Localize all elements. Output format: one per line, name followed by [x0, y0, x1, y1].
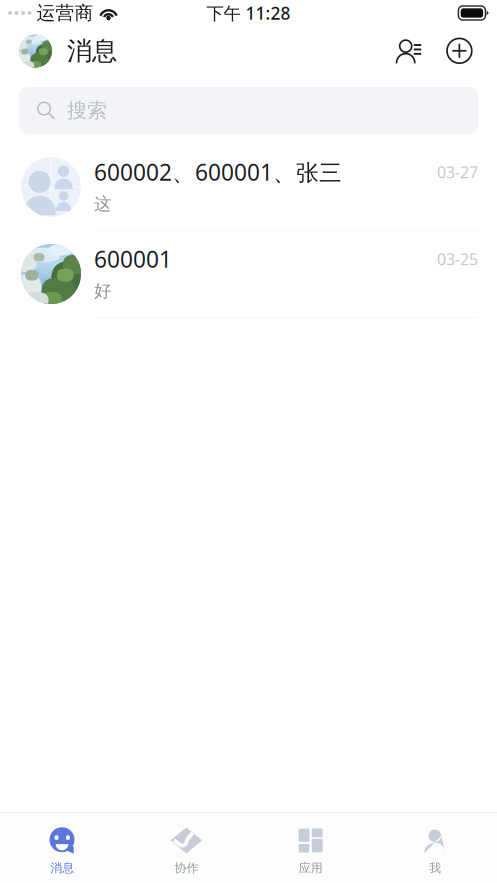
staticText: 下午 11:28: [206, 1, 290, 24]
button[interactable]: 600001: [0, 231, 497, 318]
staticText: 这: [94, 193, 111, 215]
staticText: 消息: [50, 861, 74, 875]
button[interactable]: 我: [373, 813, 497, 883]
button[interactable]: 应用: [248, 813, 373, 883]
staticText: 消息: [67, 35, 117, 66]
button[interactable]: 600002、600001、张三: [0, 144, 497, 231]
staticText: 运营商: [36, 1, 93, 24]
staticText: 我: [429, 861, 441, 875]
staticText: 好: [94, 280, 111, 302]
button[interactable]: Profile: [19, 34, 52, 67]
staticText: 600001: [94, 244, 172, 274]
staticText: 协作: [174, 861, 198, 875]
staticText: 600002、600001、张三: [94, 157, 342, 187]
staticText: 搜索: [67, 98, 107, 123]
staticText: 03-25: [437, 248, 478, 270]
button[interactable]: Add: [446, 38, 473, 64]
button[interactable]: 搜索: [19, 87, 478, 134]
button[interactable]: 协作: [124, 813, 248, 883]
button[interactable]: Contacts: [396, 38, 421, 63]
staticText: 03-27: [437, 161, 478, 183]
staticText: 应用: [299, 861, 323, 875]
button[interactable]: 消息: [0, 813, 124, 883]
